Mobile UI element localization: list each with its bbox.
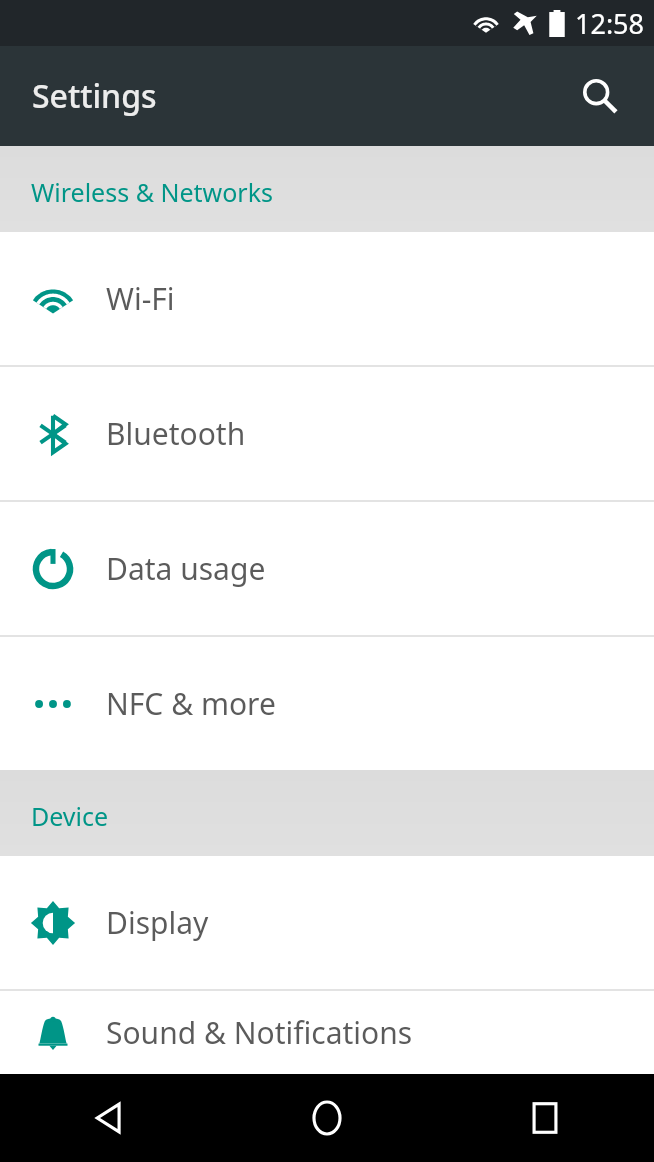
staticText: Device [31, 799, 109, 833]
staticText: Wi-Fi [106, 278, 175, 319]
button[interactable]: Back [0, 1074, 218, 1162]
button[interactable]: Data usage [0, 502, 654, 635]
staticText: Wireless & Networks [31, 175, 273, 209]
button[interactable]: Wi-Fi [0, 232, 654, 365]
button[interactable]: NFC & more [0, 637, 654, 770]
staticText: Bluetooth [106, 413, 246, 454]
staticText: NFC & more [106, 683, 276, 724]
button[interactable]: Search [568, 64, 632, 128]
button[interactable]: Display [0, 856, 654, 989]
button[interactable]: Sound & Notifications [0, 991, 654, 1074]
button[interactable]: Recent apps [436, 1074, 654, 1162]
button[interactable]: Bluetooth [0, 367, 654, 500]
staticText: Settings [32, 74, 157, 118]
button[interactable]: Home [218, 1074, 436, 1162]
staticText: Display [106, 902, 209, 943]
staticText: Data usage [106, 548, 266, 589]
staticText: Sound & Notifications [106, 1012, 413, 1053]
staticText: 12:58 [575, 5, 645, 42]
